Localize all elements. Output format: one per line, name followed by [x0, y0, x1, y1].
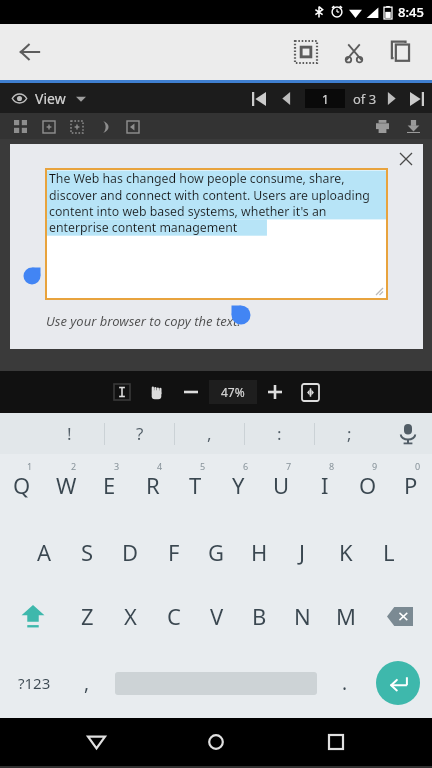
staticText: 47%	[221, 384, 245, 400]
button[interactable]: ,	[68, 648, 106, 718]
staticText: ?123	[18, 673, 51, 693]
button[interactable]: K	[324, 520, 367, 584]
staticText: 7	[286, 460, 292, 472]
staticText: Y	[232, 470, 245, 500]
staticText: of 3	[353, 90, 377, 108]
button[interactable]: ?123	[0, 648, 68, 718]
button[interactable]: .	[326, 648, 364, 718]
staticText: 6	[243, 460, 249, 472]
staticText: V	[210, 601, 224, 631]
button[interactable]: Z	[66, 584, 109, 648]
staticText: S	[81, 537, 94, 567]
button[interactable]: B	[238, 584, 281, 648]
staticText: K	[339, 537, 353, 567]
button[interactable]: !	[35, 413, 104, 454]
staticText: J	[299, 537, 306, 567]
button[interactable]: Backspace	[367, 584, 432, 648]
staticText: e Web has changed how people consume, sh…	[54, 293, 309, 301]
staticText: H	[251, 537, 268, 567]
button[interactable]: 1	[0, 454, 44, 520]
button[interactable]: Pan mode	[143, 379, 169, 405]
staticText: The Web has changed how people consume, …	[49, 170, 385, 235]
button[interactable]: 5	[174, 454, 217, 520]
button[interactable]: 4	[131, 454, 174, 520]
staticText: O	[359, 470, 377, 500]
staticText: Q	[13, 470, 31, 500]
staticText: T	[189, 470, 202, 500]
staticText: B	[252, 601, 267, 631]
button[interactable]: Fit width	[297, 379, 323, 405]
staticText: L	[383, 537, 395, 567]
button[interactable]: Close	[393, 146, 419, 172]
button[interactable]: C	[152, 584, 195, 648]
button[interactable]: Space	[106, 648, 326, 718]
button[interactable]: X	[109, 584, 152, 648]
staticText: R	[146, 470, 160, 500]
button[interactable]: D	[109, 520, 152, 584]
button[interactable]: 6	[217, 454, 260, 520]
button[interactable]: F	[152, 520, 195, 584]
staticText: 0	[415, 460, 421, 472]
button[interactable]: Recent apps	[312, 718, 360, 766]
button[interactable]: 2	[44, 454, 88, 520]
button[interactable]: :	[245, 413, 314, 454]
staticText: are uploading content into web based sys…	[54, 304, 315, 312]
staticText: ;	[347, 422, 352, 445]
staticText: 8	[329, 460, 335, 472]
button[interactable]: Enter	[364, 648, 432, 718]
staticText: View	[35, 89, 66, 108]
staticText: P	[404, 470, 418, 500]
staticText: 3	[114, 460, 120, 472]
button[interactable]: ,	[175, 413, 244, 454]
button[interactable]: Back	[8, 30, 52, 74]
staticText: .	[342, 670, 348, 696]
button[interactable]: Text select mode	[109, 379, 135, 405]
button[interactable]: V	[195, 584, 238, 648]
button[interactable]: Select all	[282, 28, 330, 76]
button[interactable]: J	[281, 520, 324, 584]
staticText: I	[321, 470, 329, 500]
staticText: Use your browser to copy the text.	[46, 312, 241, 330]
button[interactable]: Cut	[330, 28, 378, 76]
button[interactable]: 9	[346, 454, 389, 520]
staticText: 1	[322, 91, 329, 107]
button[interactable]: Voice input	[384, 413, 432, 454]
button[interactable]: M	[324, 584, 367, 648]
staticText: ,	[84, 670, 90, 696]
staticText: E	[103, 470, 116, 500]
button[interactable]: H	[238, 520, 281, 584]
staticText: :	[277, 422, 282, 445]
staticText: D	[122, 537, 139, 567]
staticText: ?	[136, 422, 144, 445]
button[interactable]: ?	[105, 413, 174, 454]
staticText: A	[37, 537, 52, 567]
button[interactable]: 0	[389, 454, 432, 520]
button[interactable]: 7	[260, 454, 303, 520]
button[interactable]: 8	[303, 454, 346, 520]
staticText: ,	[207, 422, 212, 445]
staticText: M	[336, 601, 356, 631]
staticText: X	[124, 601, 137, 631]
button[interactable]: A	[23, 520, 66, 584]
button[interactable]: S	[66, 520, 109, 584]
staticText: 1	[27, 460, 33, 472]
staticText: F	[168, 537, 180, 567]
button[interactable]: Shift	[0, 584, 66, 648]
button[interactable]: Zoom out	[177, 378, 205, 406]
button[interactable]: N	[281, 584, 324, 648]
button[interactable]: G	[195, 520, 238, 584]
button[interactable]: 3	[88, 454, 131, 520]
button[interactable]: ;	[315, 413, 384, 454]
staticText: N	[294, 601, 311, 631]
staticText: 4	[157, 460, 163, 472]
staticText: C	[167, 601, 181, 631]
button[interactable]: Back	[72, 718, 120, 766]
button[interactable]: L	[367, 520, 410, 584]
staticText: 2	[71, 460, 77, 472]
button[interactable]: Zoom in	[261, 378, 289, 406]
staticText: !	[67, 422, 72, 445]
button[interactable]: Copy	[378, 28, 426, 76]
button[interactable]: Home	[192, 718, 240, 766]
staticText: 9	[372, 460, 378, 472]
staticText: 5	[200, 460, 206, 472]
